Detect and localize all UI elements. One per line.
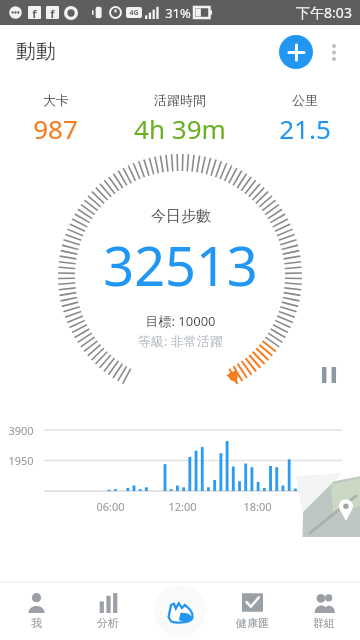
staticText: 我	[31, 616, 42, 630]
button[interactable]: More options	[316, 34, 352, 70]
staticText: 31%	[165, 4, 191, 22]
button[interactable]: 我	[0, 582, 72, 640]
staticText: 3900	[8, 423, 34, 438]
button[interactable]: 活躍時間	[111, 92, 249, 146]
staticText: 下午8:03	[296, 3, 352, 22]
staticText: 4h 39m	[134, 111, 226, 146]
button[interactable]: Map	[296, 473, 360, 537]
staticText: 今日步數	[151, 207, 211, 226]
staticText: 987	[33, 111, 78, 146]
button[interactable]: 群組	[288, 582, 360, 640]
staticText: 18:00	[243, 499, 272, 514]
staticText: 群組	[313, 616, 335, 630]
staticText: 大卡	[43, 92, 69, 108]
staticText: 分析	[97, 616, 119, 630]
button[interactable]: 分析	[72, 582, 144, 640]
staticText: 活躍時間	[154, 92, 206, 108]
button[interactable]: 健康匯	[216, 582, 288, 640]
staticText: 目標: 10000	[145, 312, 216, 330]
staticText: 32513	[103, 228, 258, 302]
staticText: 06:00	[96, 499, 125, 514]
staticText: f	[50, 6, 55, 19]
staticText: 公里	[292, 92, 318, 108]
staticText: f	[32, 6, 37, 19]
staticText: 健康匯	[236, 616, 269, 630]
staticText: 動動	[16, 39, 56, 64]
button[interactable]: 公里	[249, 92, 360, 146]
staticText: 12:00	[168, 499, 197, 514]
staticText: 4G	[129, 8, 139, 18]
button[interactable]: Add activity	[279, 35, 313, 69]
staticText: 21.5	[279, 111, 331, 146]
staticText: 等級: 非常活躍	[138, 332, 223, 350]
button[interactable]: 大卡	[0, 92, 111, 146]
button[interactable]: Pause	[312, 358, 346, 392]
staticText: 1950	[8, 453, 34, 468]
button[interactable]: Activity	[154, 585, 206, 637]
